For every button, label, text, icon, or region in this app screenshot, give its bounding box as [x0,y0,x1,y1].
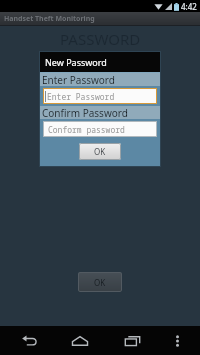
staticText: Confirm Password [42,106,128,119]
button[interactable]: OK [79,143,121,160]
button[interactable]: Conform password [43,121,157,137]
staticText: Enter Password [47,91,115,102]
staticText: Enter Password [42,73,115,86]
staticText: OK [94,146,106,157]
button[interactable]: Recent apps [117,326,147,355]
staticText: OK [94,277,106,288]
staticText: New Password [45,56,107,68]
button[interactable]: Back [14,326,44,355]
button[interactable]: OK [78,272,122,292]
staticText: Handset Theft Monitoring [4,14,95,24]
button[interactable]: Enter Password [43,88,157,104]
staticText: PASSWORD [60,29,141,49]
staticText: Conform password [48,124,125,135]
button[interactable]: More options [168,332,186,350]
button[interactable]: Home [65,326,95,355]
staticText: 4:42 [181,1,197,12]
